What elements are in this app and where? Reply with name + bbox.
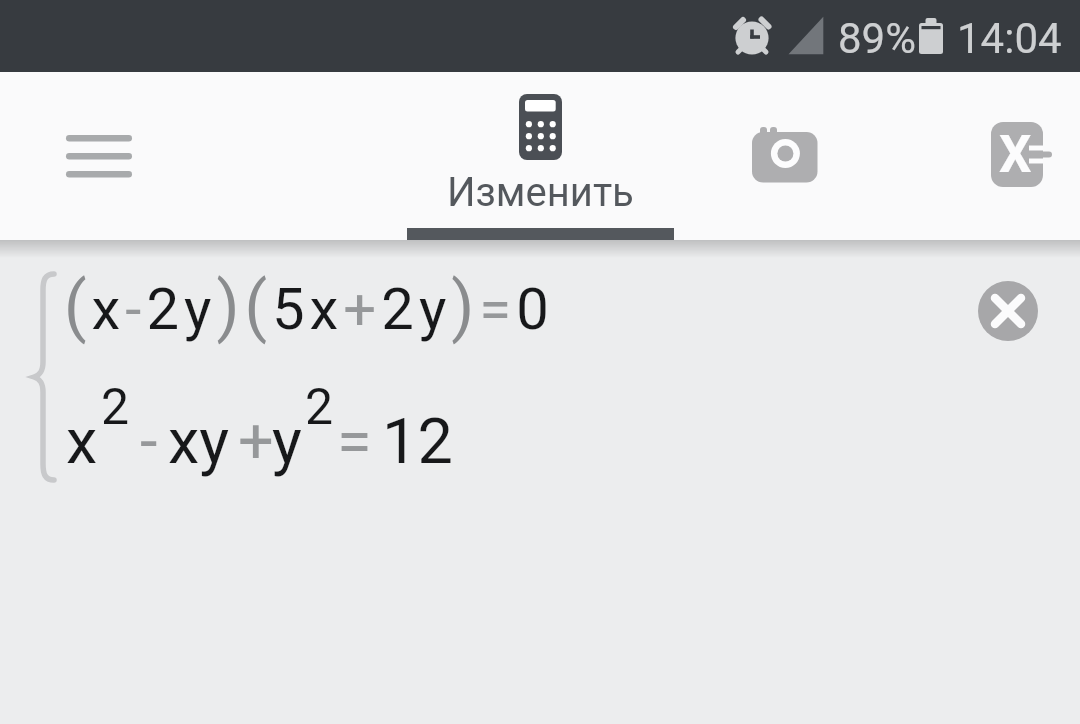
staticText: X bbox=[999, 125, 1032, 185]
button[interactable] bbox=[730, 102, 840, 212]
button[interactable] bbox=[978, 281, 1038, 341]
staticText: 12 bbox=[382, 405, 453, 479]
staticText: 2 bbox=[101, 378, 130, 437]
staticText: xy bbox=[168, 405, 230, 479]
staticText: - bbox=[140, 405, 158, 479]
staticText: = bbox=[337, 405, 372, 479]
button[interactable]: Изменить bbox=[407, 94, 674, 240]
button[interactable] bbox=[48, 116, 150, 195]
staticText: 2 bbox=[305, 378, 334, 437]
button[interactable]: X bbox=[966, 102, 1076, 212]
staticText: + bbox=[238, 405, 274, 479]
staticText: 14:04 bbox=[957, 14, 1062, 63]
staticText: y bbox=[272, 405, 302, 479]
staticText: (x-2y)(5x+2y)=0 bbox=[64, 268, 554, 345]
staticText: 89% bbox=[838, 14, 916, 63]
staticText: x bbox=[66, 405, 98, 479]
staticText: Изменить bbox=[447, 169, 634, 216]
